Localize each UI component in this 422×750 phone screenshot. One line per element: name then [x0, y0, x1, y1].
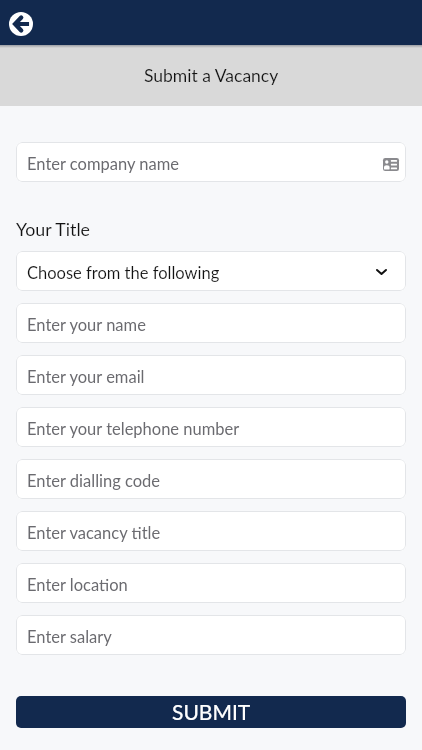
button[interactable]: Back: [4, 7, 37, 40]
button[interactable]: Enter your name: [16, 303, 406, 343]
staticText: Enter salary: [27, 627, 395, 647]
button[interactable]: Enter dialling code: [16, 459, 406, 499]
staticText: Enter company name: [27, 154, 379, 174]
staticText: Choose from the following: [27, 263, 384, 283]
staticText: Your Title: [16, 218, 90, 239]
staticText: Enter vacancy title: [27, 523, 395, 543]
button[interactable]: Enter vacancy title: [16, 511, 406, 551]
button[interactable]: Enter your telephone number: [16, 407, 406, 447]
staticText: Enter location: [27, 575, 395, 595]
button[interactable]: Choose from the following: [16, 251, 406, 291]
button[interactable]: SUBMIT: [16, 696, 406, 728]
staticText: SUBMIT: [172, 699, 251, 724]
button[interactable]: Enter your email: [16, 355, 406, 395]
staticText: Enter your email: [27, 367, 395, 387]
button[interactable]: Enter company name: [16, 142, 406, 182]
button[interactable]: Enter salary: [16, 615, 406, 655]
staticText: Enter your name: [27, 315, 395, 335]
staticText: Enter dialling code: [27, 471, 395, 491]
button[interactable]: Enter location: [16, 563, 406, 603]
staticText: Enter your telephone number: [27, 419, 395, 439]
staticText: Submit a Vacancy: [144, 65, 279, 86]
